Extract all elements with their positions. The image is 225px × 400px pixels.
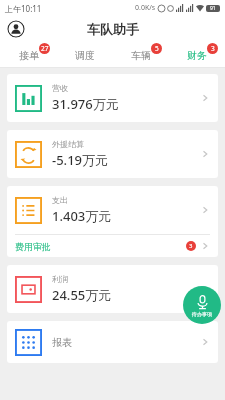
staticText: 31.976万元 [52, 95, 119, 113]
staticText: 1.403万元 [52, 207, 112, 225]
staticText: -5.19万元 [52, 151, 109, 169]
staticText: 营收 [52, 83, 68, 93]
staticText: 费用审批 [15, 241, 51, 252]
staticText: 利润 [52, 274, 68, 284]
staticText: 调度 [75, 49, 95, 62]
button[interactable]: 财务 [169, 42, 225, 68]
staticText: 接单 [19, 49, 39, 62]
button[interactable]: 车辆 [113, 42, 169, 68]
staticText: 24.55万元 [52, 286, 112, 304]
button[interactable]: 待办事项 语音 [183, 286, 221, 324]
staticText: 27 [41, 44, 49, 53]
button[interactable]: 费用审批 [7, 235, 218, 257]
staticText: 3 [211, 44, 215, 53]
staticText: 车队助手 [87, 21, 139, 37]
button[interactable]: 外援结算 [7, 130, 218, 178]
staticText: 财务 [187, 49, 207, 62]
staticText: 报表 [52, 336, 72, 349]
button[interactable]: 个人中心 [7, 20, 25, 38]
staticText: 3 [189, 242, 193, 250]
staticText: 车辆 [131, 49, 151, 62]
button[interactable]: 接单 [0, 42, 57, 68]
staticText: 91 [210, 5, 216, 12]
button[interactable]: 营收 [7, 74, 218, 122]
button[interactable]: 支出 [7, 186, 218, 234]
staticText: 支出 [52, 195, 68, 205]
button[interactable]: 报表 [7, 321, 218, 363]
button[interactable]: 利润 [7, 265, 218, 313]
staticText: 外援结算 [52, 139, 84, 149]
button[interactable]: 调度 [57, 42, 113, 68]
staticText: 待办事项 [192, 311, 212, 317]
staticText: 上午10:11 [5, 3, 42, 14]
staticText: 0.0K/s [135, 3, 156, 13]
staticText: 5 [155, 44, 159, 53]
